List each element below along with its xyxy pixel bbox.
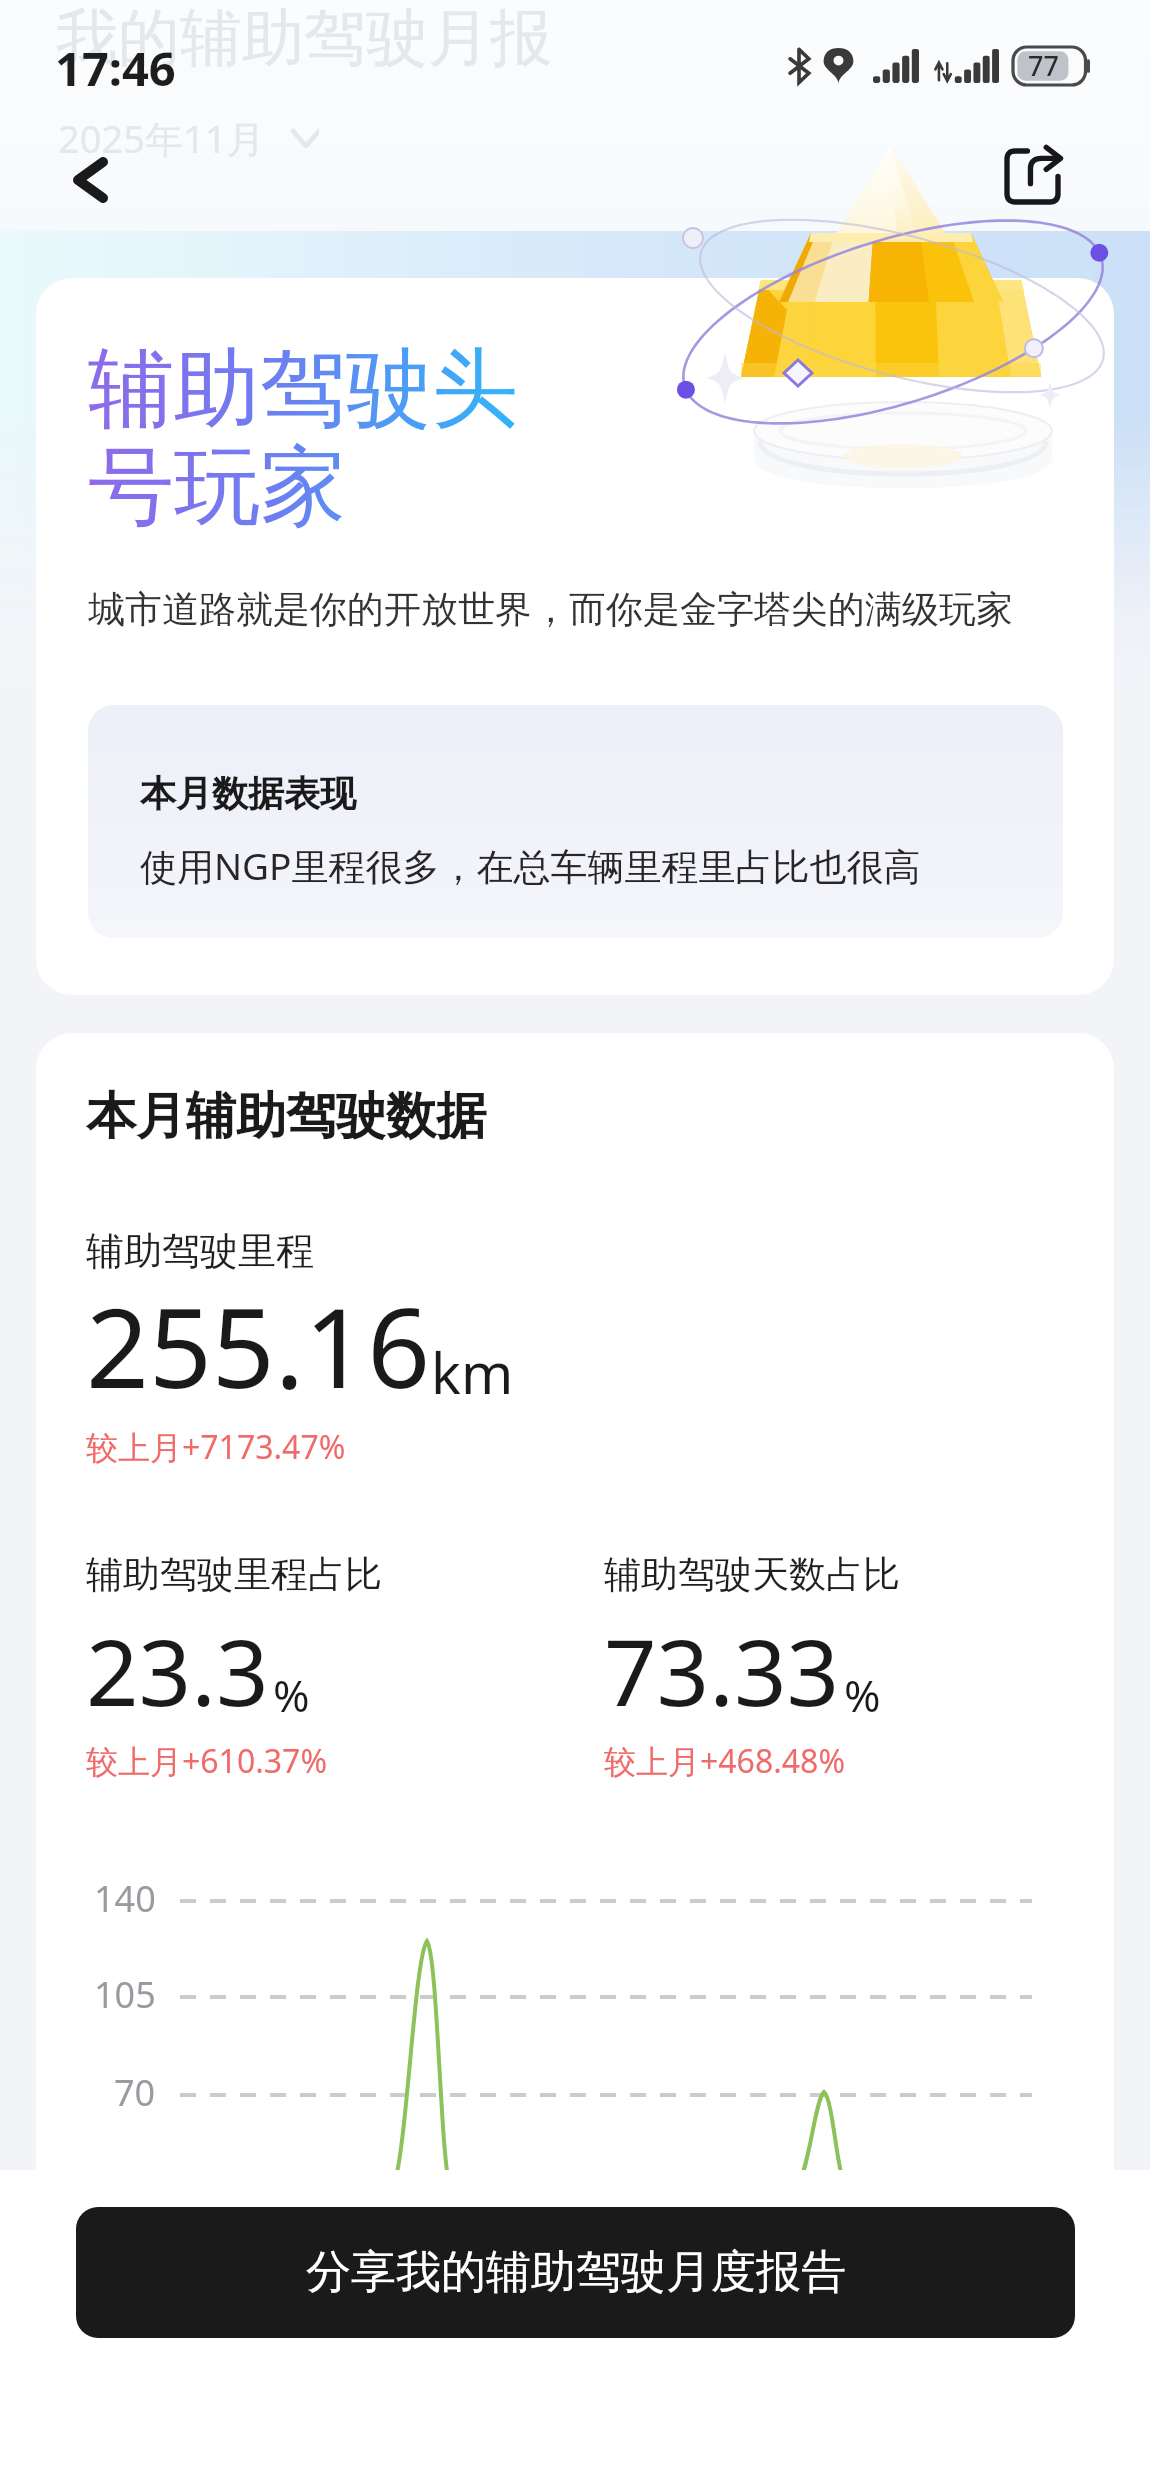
staticText: 分享我的辅助驾驶月度报告	[306, 2244, 846, 2301]
staticText: 辅助驾驶天数占比	[604, 1551, 900, 1598]
staticText: 70	[114, 2068, 156, 2117]
button[interactable]: Back	[33, 124, 145, 236]
staticText: 使用NGP里程很多，在总车辆里程里占比也很高	[140, 840, 921, 891]
staticText: 17:46	[55, 36, 176, 100]
button[interactable]: Share	[970, 122, 1080, 232]
staticText: 辅助驾驶里程	[86, 1227, 314, 1275]
button[interactable]: 2025年11月	[58, 112, 319, 164]
staticText: 辅助驾驶头 号玩家	[88, 335, 518, 542]
staticText: 73.33	[604, 1608, 840, 1733]
staticText: 140	[94, 1874, 156, 1923]
staticText: 较上月+468.48%	[604, 1739, 845, 1783]
staticText: 23.3	[86, 1608, 269, 1733]
staticText: 77	[1028, 47, 1059, 84]
staticText: %	[273, 1665, 310, 1725]
staticText: 105	[94, 1970, 156, 2019]
staticText: %	[844, 1665, 881, 1725]
staticText: 本月辅助驾驶数据	[86, 1085, 486, 1148]
staticText: 255.16	[86, 1270, 431, 1420]
staticText: 城市道路就是你的开放世界，而你是金字塔尖的满级玩家	[88, 586, 1013, 633]
staticText: km	[431, 1334, 514, 1410]
staticText: 本月数据表现	[140, 771, 356, 816]
staticText: 较上月+610.37%	[86, 1739, 327, 1783]
button[interactable]: 分享我的辅助驾驶月度报告	[76, 2207, 1075, 2338]
staticText: 2025年11月	[58, 112, 265, 164]
staticText: 较上月+7173.47%	[86, 1425, 346, 1469]
staticText: 我的辅助驾驶月报	[56, 0, 552, 77]
staticText: 辅助驾驶里程占比	[86, 1551, 382, 1598]
